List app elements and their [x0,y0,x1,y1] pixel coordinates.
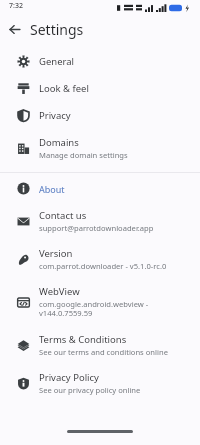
staticText: General [39,55,75,68]
button[interactable]: Back [4,19,24,39]
button[interactable]: Terms & Conditions [0,326,200,364]
staticText: WebView [39,285,80,298]
staticText: support@parrotdownloader.app [39,223,154,233]
button[interactable]: Domains [0,129,200,167]
staticText: com.parrot.downloader - v5.1.0-rc.0 [39,261,167,271]
staticText: Domains [39,136,79,149]
staticText: Version [39,247,73,260]
staticText: com.google.android.webview - v144.0.7559… [39,299,149,319]
staticText: Settings [30,20,84,39]
staticText: 7:32 [9,1,23,11]
button[interactable]: About [0,175,200,202]
button[interactable]: Look & feel [0,75,200,102]
button[interactable]: Privacy Policy [0,364,200,402]
staticText: See our privacy policy online [39,385,141,395]
button[interactable]: WebView [0,278,200,326]
button[interactable]: Contact us [0,202,200,240]
staticText: See our terms and conditions online [39,347,168,357]
staticText: About [39,183,65,195]
staticText: Look & feel [39,82,89,95]
staticText: Privacy [39,109,71,122]
button[interactable]: Privacy [0,102,200,129]
button[interactable]: General [0,48,200,75]
staticText: Privacy Policy [39,371,99,384]
staticText: Contact us [39,209,87,222]
staticText: Manage domain settings [39,150,128,160]
button[interactable]: Version [0,240,200,278]
staticText: Terms & Conditions [39,333,127,346]
